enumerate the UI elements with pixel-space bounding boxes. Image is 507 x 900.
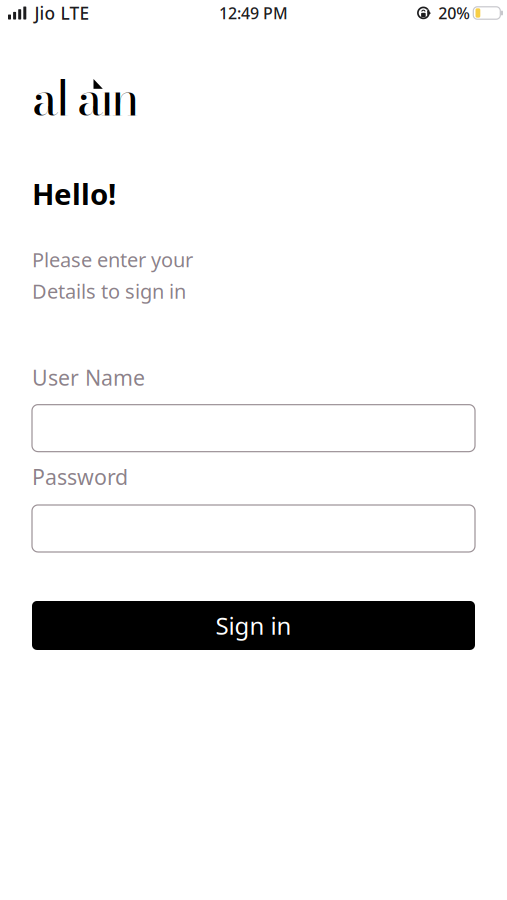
staticText: User Name <box>32 363 145 392</box>
button[interactable]: User Name <box>32 405 475 452</box>
staticText: Password <box>32 463 128 491</box>
button[interactable]: Password <box>32 505 475 552</box>
staticText: Details to sign in <box>32 278 186 304</box>
staticText: 12:49 PM <box>219 2 288 24</box>
staticText: Sign in <box>215 609 291 641</box>
button[interactable]: Sign in <box>32 601 475 650</box>
staticText: Hello! <box>32 174 116 213</box>
staticText: Jio LTE <box>35 1 90 24</box>
staticText: al aın <box>32 60 140 135</box>
staticText: Please enter your <box>32 246 193 273</box>
staticText: 20% <box>438 2 470 24</box>
